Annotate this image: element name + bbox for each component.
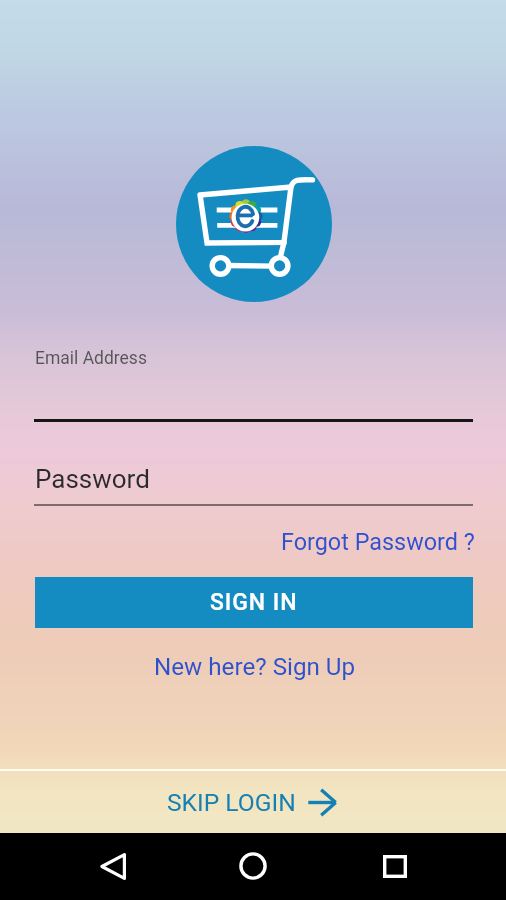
staticText: SKIP LOGIN	[167, 788, 296, 817]
button[interactable]: Recents	[363, 834, 427, 898]
button[interactable]: New here? Sign Up	[154, 653, 356, 681]
button[interactable]: SIGN IN	[35, 577, 473, 628]
button[interactable]: Forgot Password ?	[281, 528, 475, 555]
button[interactable]: Back	[81, 834, 145, 898]
staticText: Forgot Password ?	[281, 528, 475, 555]
staticText: New here? Sign Up	[154, 653, 356, 681]
staticText: Email Address	[35, 348, 147, 369]
button[interactable]: Home	[221, 834, 285, 898]
button[interactable]: SKIP LOGIN	[0, 771, 506, 833]
staticText: SIGN IN	[210, 589, 298, 616]
staticText: Password	[35, 464, 150, 494]
